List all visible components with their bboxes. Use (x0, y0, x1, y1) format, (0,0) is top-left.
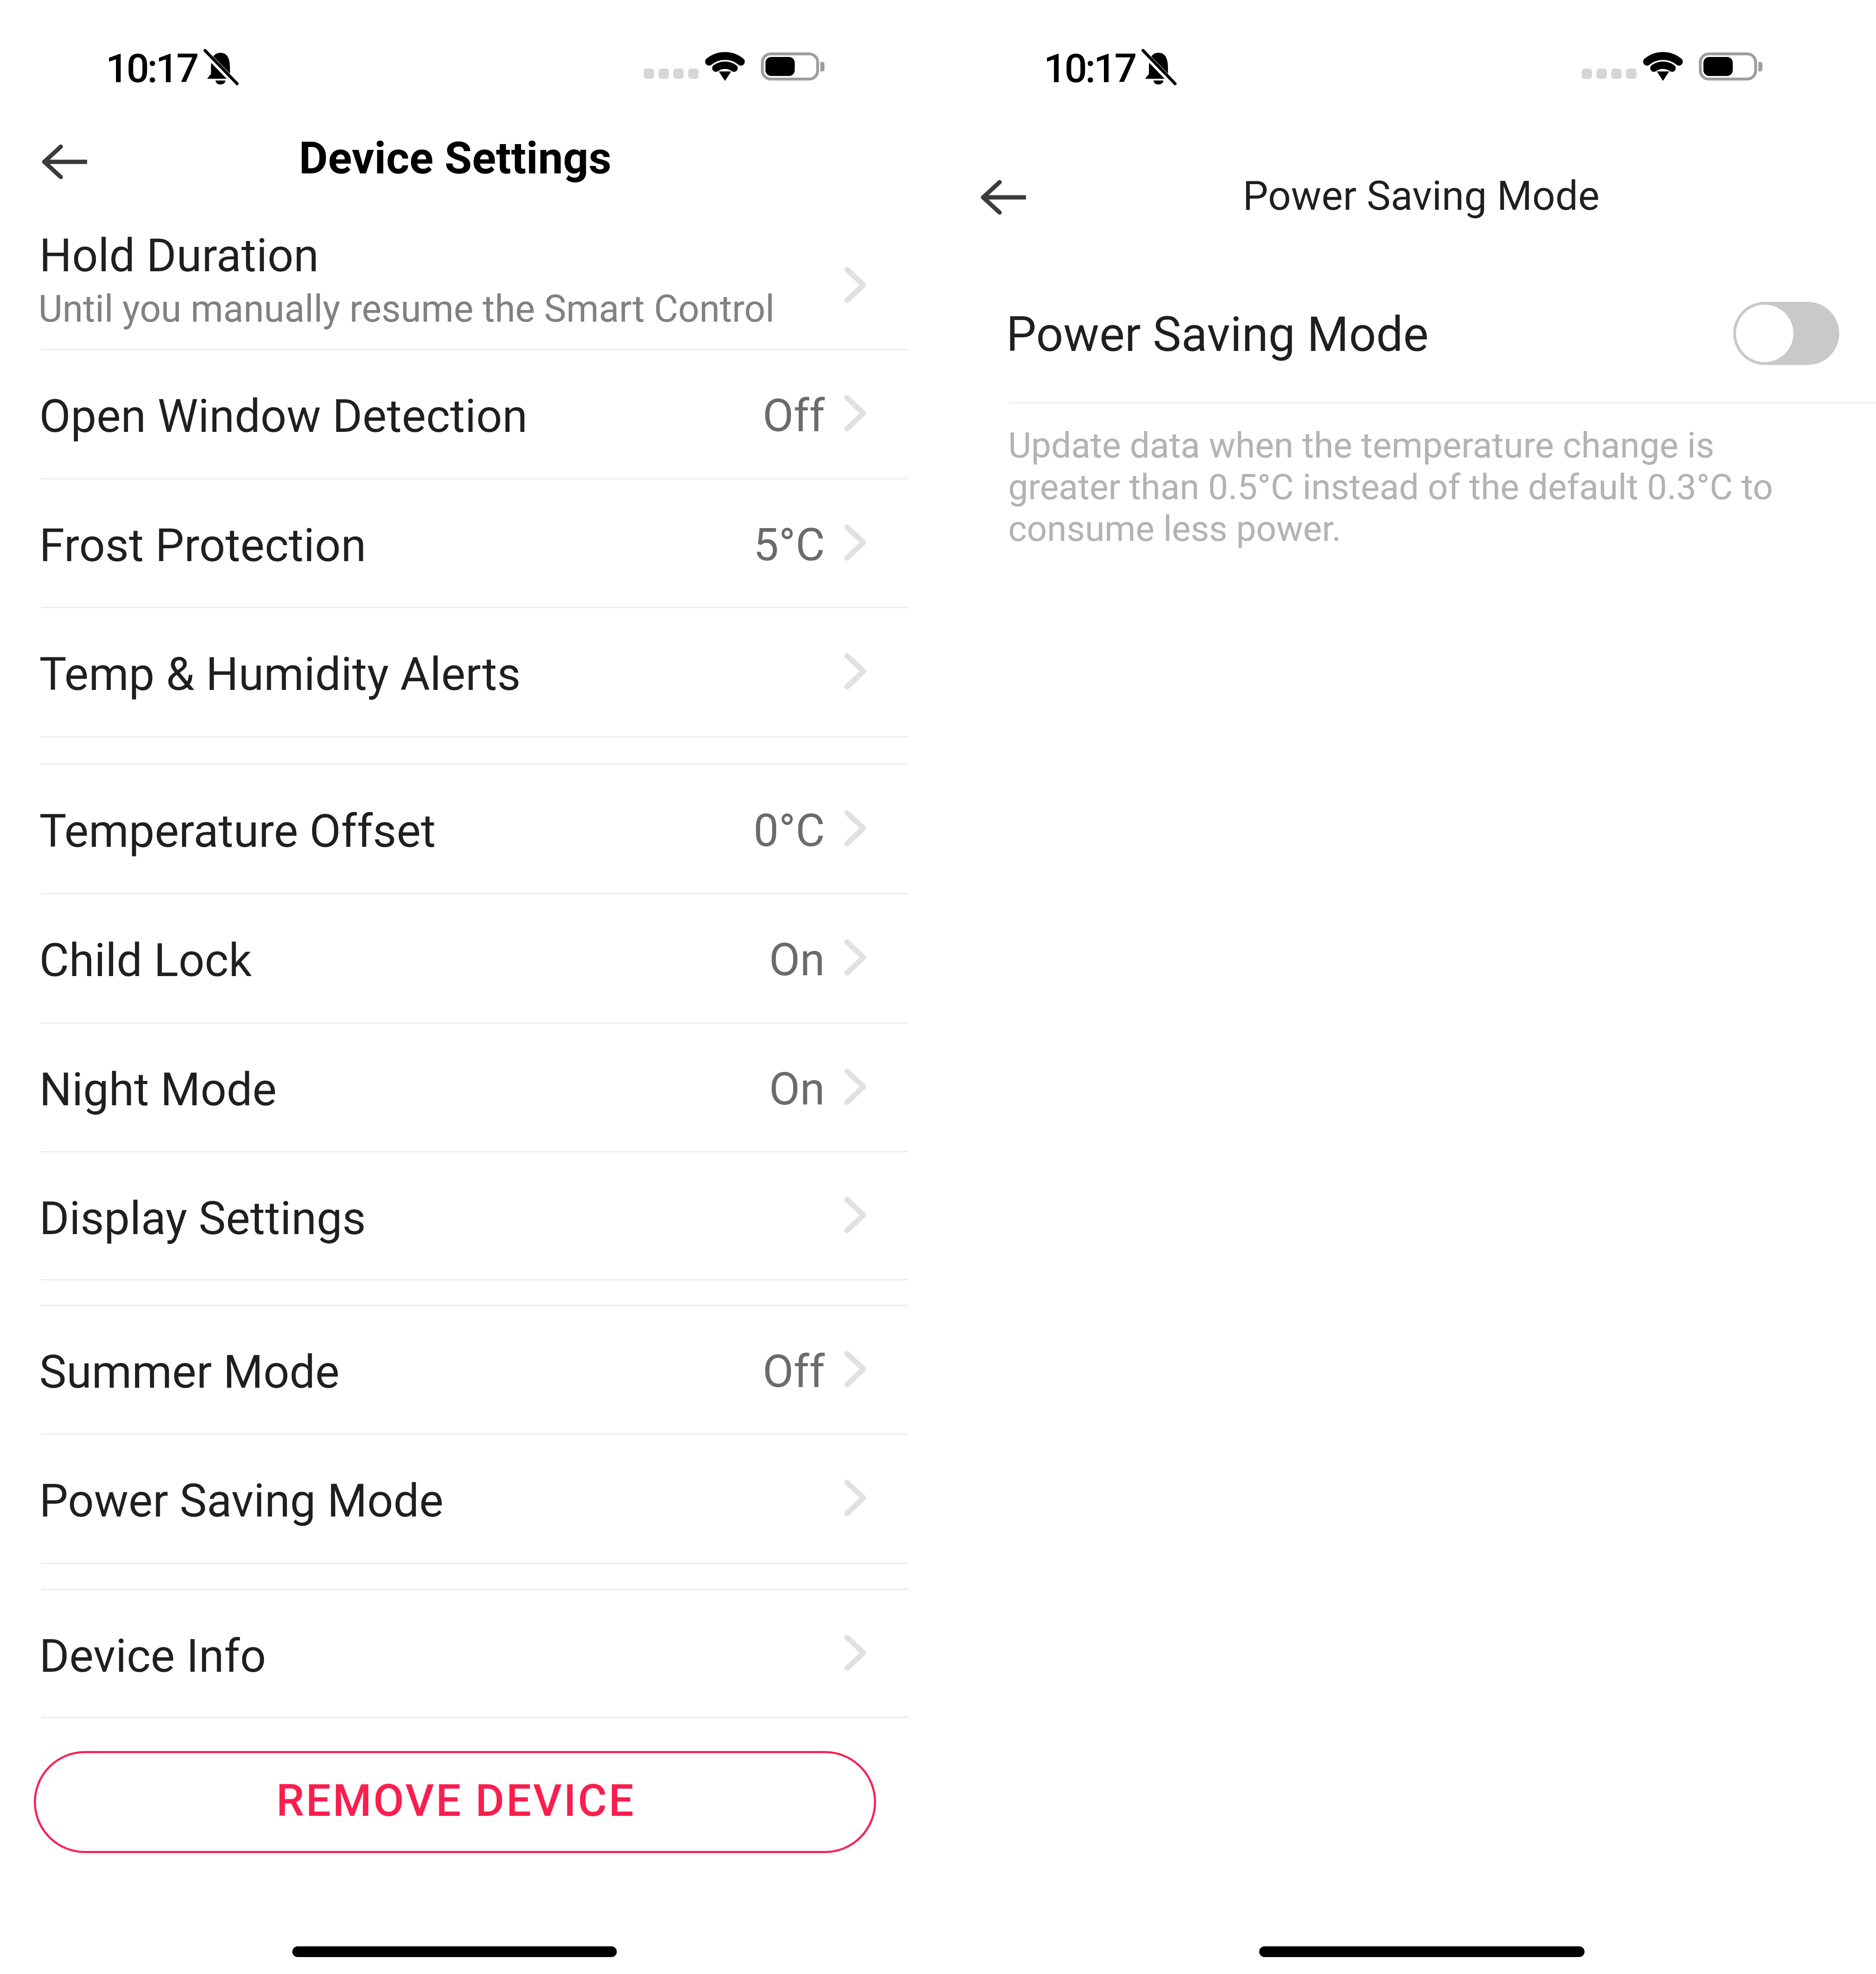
button[interactable]: Power Saving Mode toggle, off (1733, 302, 1839, 365)
staticText: Off (578, 389, 825, 442)
staticText: On (578, 1063, 825, 1116)
staticText: Power Saving Mode (1006, 306, 1429, 363)
staticText: Display Settings (39, 1192, 366, 1245)
button[interactable]: Open Window Detection (0, 349, 938, 478)
staticText: Off (578, 1345, 825, 1398)
button[interactable]: Device Info (0, 1589, 938, 1717)
staticText: 5°C (578, 519, 825, 571)
staticText: Frost Protection (39, 519, 366, 572)
staticText: Device Info (39, 1629, 266, 1683)
staticText: 0°C (578, 804, 825, 857)
staticText: Child Lock (39, 934, 252, 987)
staticText: Until you manually resume the Smart Cont… (38, 287, 775, 331)
staticText: 10:17 (1044, 45, 1135, 92)
staticText: Summer Mode (39, 1345, 340, 1399)
staticText: Device Settings (299, 132, 612, 185)
staticText: Night Mode (39, 1063, 277, 1116)
staticText: Update data when the temperature change … (1008, 424, 1797, 550)
staticText: Temperature Offset (39, 804, 436, 858)
button[interactable]: Summer Mode (0, 1305, 938, 1434)
staticText: Power Saving Mode (39, 1474, 444, 1528)
button[interactable]: Temperature Offset (0, 763, 938, 893)
button[interactable]: Display Settings (0, 1151, 938, 1279)
staticText: Open Window Detection (39, 389, 528, 443)
staticText: On (578, 934, 825, 986)
button[interactable]: Temp & Humidity Alerts (0, 607, 938, 736)
staticText: Temp & Humidity Alerts (39, 647, 521, 701)
button[interactable]: Frost Protection (0, 478, 938, 607)
button[interactable]: Power Saving Mode (0, 1434, 938, 1563)
button[interactable]: Night Mode (0, 1022, 938, 1151)
button[interactable]: Child Lock (0, 893, 938, 1022)
staticText: 10:17 (106, 45, 197, 92)
button[interactable]: Hold Duration (0, 219, 938, 349)
button[interactable]: REMOVE DEVICE (34, 1751, 876, 1853)
button[interactable]: Back (19, 125, 110, 199)
staticText: Power Saving Mode (1243, 172, 1600, 220)
staticText: Hold Duration (39, 229, 319, 282)
button[interactable]: Back (958, 160, 1049, 235)
staticText: REMOVE DEVICE (276, 1775, 635, 1827)
